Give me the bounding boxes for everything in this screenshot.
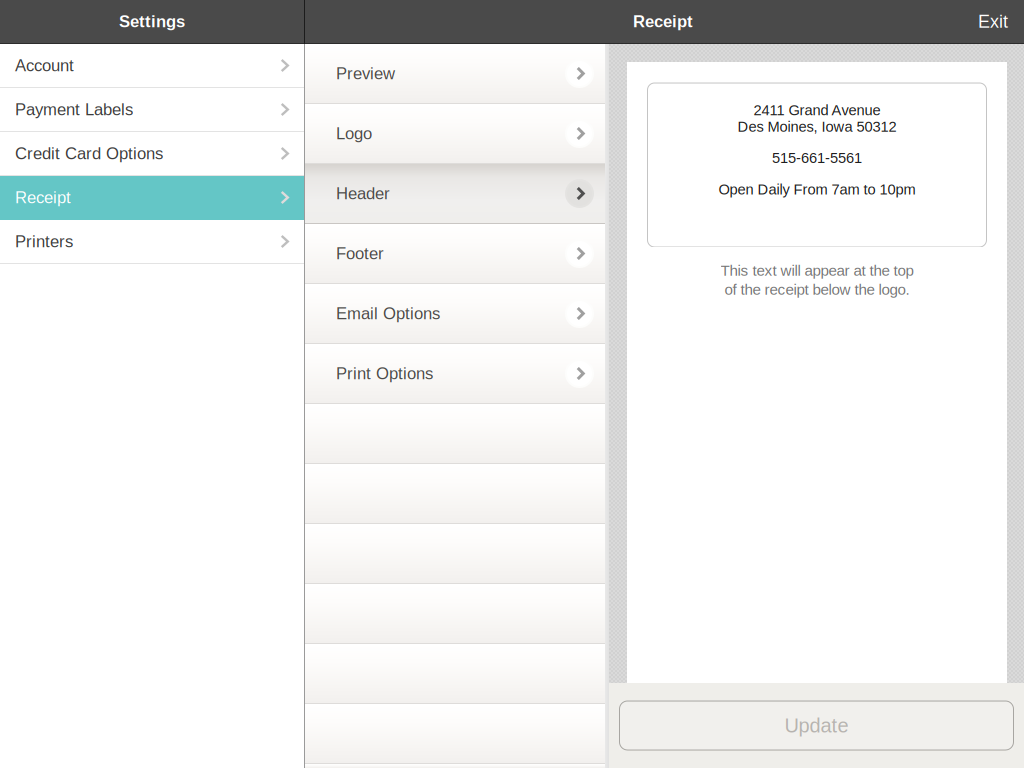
staticText: Update	[784, 714, 848, 737]
button[interactable]: Payment Labels	[0, 88, 304, 132]
button[interactable]: Email Options	[305, 284, 609, 344]
staticText: Credit Card Options	[15, 144, 163, 163]
staticText: of the receipt below the logo.	[724, 281, 909, 298]
staticText: Receipt	[15, 188, 71, 207]
staticText: 515-661-5561	[772, 150, 862, 166]
staticText: Des Moines, Iowa 50312	[737, 118, 896, 135]
staticText: Print Options	[336, 364, 433, 383]
staticText: Printers	[15, 232, 73, 251]
button[interactable]: Exit	[978, 11, 1008, 31]
button[interactable]: Print Options	[305, 344, 609, 404]
staticText: Open Daily From 7am to 10pm	[718, 181, 915, 198]
staticText: Email Options	[336, 304, 440, 323]
button[interactable]: Account	[0, 44, 304, 88]
staticText: This text will appear at the top	[720, 262, 913, 279]
staticText: Payment Labels	[15, 100, 133, 119]
button[interactable]: Credit Card Options	[0, 132, 304, 176]
staticText: Header	[336, 184, 390, 203]
staticText: Account	[15, 56, 74, 75]
staticText: Exit	[978, 11, 1008, 31]
button[interactable]: Receipt	[0, 176, 304, 220]
button[interactable]: Header	[305, 164, 609, 224]
staticText: Settings	[119, 12, 185, 31]
staticText: Receipt	[633, 12, 693, 31]
staticText: 2411 Grand Avenue	[753, 102, 880, 118]
staticText: Footer	[336, 244, 384, 263]
button[interactable]: Logo	[305, 104, 609, 164]
staticText: Logo	[336, 124, 372, 143]
button[interactable]: Update	[619, 701, 1013, 750]
staticText: Preview	[336, 64, 395, 83]
button[interactable]: Preview	[305, 44, 609, 104]
button[interactable]: Footer	[305, 224, 609, 284]
button[interactable]: Printers	[0, 220, 304, 264]
